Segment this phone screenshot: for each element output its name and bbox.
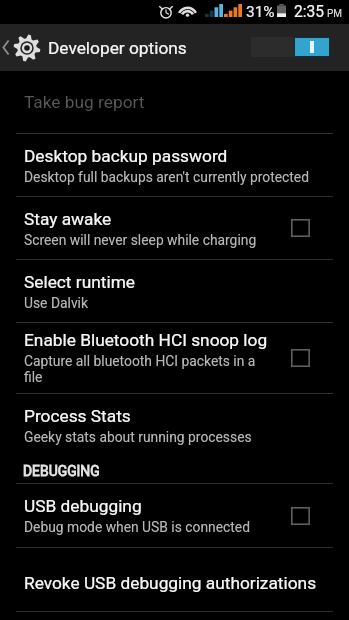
staticText: Take bug report [24, 92, 145, 112]
button[interactable]: Process Stats [0, 394, 349, 456]
button[interactable]: USB debugging [0, 484, 349, 547]
staticText: DEBUGGING [23, 463, 100, 479]
button[interactable]: Take bug report [0, 71, 349, 133]
staticText: Developer options [48, 38, 187, 58]
staticText: Geeky stats about running processes [24, 429, 252, 445]
staticText: Select runtime [24, 272, 135, 292]
staticText: 31% [246, 3, 275, 21]
staticText: Debug mode when USB is connected [24, 519, 251, 535]
staticText: USB debugging [24, 496, 142, 516]
staticText: PM [327, 8, 343, 20]
staticText: 2:35 [294, 3, 325, 21]
button[interactable]: Enable Bluetooth HCI snoop log [0, 323, 349, 393]
staticText: Desktop full backups aren't currently pr… [24, 169, 310, 185]
staticText: Use Dalvik [24, 295, 88, 311]
staticText: Screen will never sleep while charging [24, 232, 257, 248]
button[interactable]: Navigate up [0, 24, 187, 71]
button[interactable]: Stay awake [0, 197, 349, 259]
staticText: Desktop backup password [24, 146, 228, 166]
button[interactable]: Desktop backup password [0, 134, 349, 196]
button[interactable]: Revoke USB debugging authorizations [0, 548, 349, 611]
staticText: Capture all bluetooth HCI packets in a f… [24, 353, 270, 386]
button[interactable]: Developer options on/off [251, 37, 330, 57]
staticText: Stay awake [24, 209, 112, 229]
button[interactable]: Select runtime [0, 260, 349, 322]
staticText: Enable Bluetooth HCI snoop log [24, 330, 268, 350]
staticText: Process Stats [24, 406, 131, 426]
staticText: Revoke USB debugging authorizations [24, 573, 317, 593]
